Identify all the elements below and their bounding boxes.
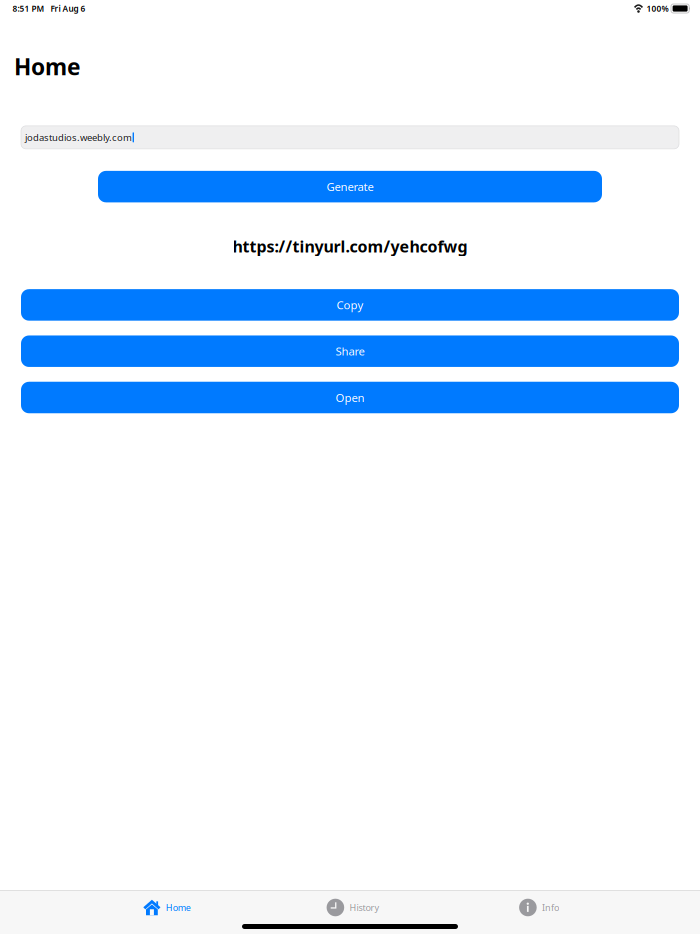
button[interactable]: History: [260, 890, 446, 924]
staticText: Info: [542, 901, 559, 914]
staticText: History: [349, 901, 379, 914]
staticText: Fri Aug 6: [50, 3, 85, 14]
button[interactable]: Info: [446, 890, 632, 924]
button[interactable]: Share: [21, 335, 679, 367]
staticText: Home: [14, 51, 81, 82]
staticText: https://tinyurl.com/yehcofwg: [232, 235, 467, 257]
staticText: jodastudios.weebly.com: [25, 131, 132, 144]
button[interactable]: Generate: [98, 171, 602, 202]
button[interactable]: Open: [21, 382, 679, 413]
button[interactable]: Home: [74, 890, 260, 924]
staticText: Open: [335, 390, 364, 405]
staticText: Home: [166, 901, 191, 914]
staticText: 100%: [646, 3, 668, 14]
staticText: Copy: [336, 297, 363, 313]
staticText: Generate: [326, 179, 373, 194]
button[interactable]: Copy: [21, 289, 679, 321]
staticText: Share: [335, 343, 364, 359]
staticText: 8:51 PM: [12, 3, 44, 14]
